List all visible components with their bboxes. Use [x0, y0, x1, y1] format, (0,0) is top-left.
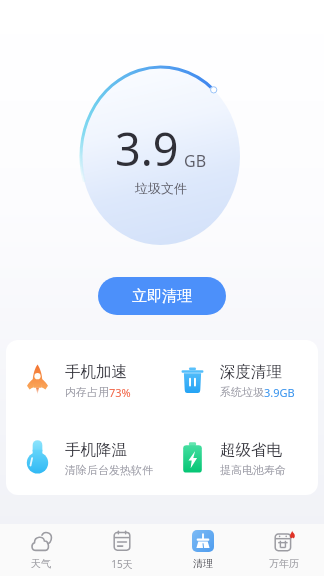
other: 天气 [30, 530, 52, 552]
other: 万年历 [273, 530, 295, 552]
staticText: 立即清理 [132, 287, 192, 306]
staticText: 内存占用 [65, 385, 109, 399]
staticText: 手机加速 [65, 362, 127, 382]
staticText: 系统垃圾 [220, 385, 264, 399]
staticText: 垃圾文件 [135, 180, 187, 196]
button[interactable]: 深度清理 [181, 362, 318, 400]
staticText: 深度清理 [220, 362, 282, 382]
button[interactable]: 手机加速 [26, 362, 165, 400]
button[interactable]: 天气 [0, 524, 81, 576]
button[interactable]: 清理 [162, 524, 243, 576]
button[interactable]: 立即清理 [98, 277, 226, 315]
button[interactable]: 超级省电 [181, 439, 318, 477]
button[interactable]: 15天 [81, 524, 162, 576]
staticText: GB [184, 150, 207, 172]
staticText: 万年历 [269, 557, 299, 570]
staticText: 清理 [193, 557, 213, 570]
staticText: 3.9 [115, 118, 179, 179]
button[interactable]: 手机降温 [26, 439, 165, 477]
button[interactable]: 万年历 [243, 524, 324, 576]
other: 15天 [111, 530, 133, 552]
staticText: 清除后台发热软件 [65, 463, 153, 477]
staticText: 15天 [111, 557, 133, 571]
staticText: 手机降温 [65, 440, 127, 460]
staticText: 3.9GB [264, 385, 295, 400]
other: 清理 [192, 530, 214, 552]
staticText: 天气 [31, 557, 51, 570]
staticText: 超级省电 [220, 440, 282, 460]
staticText: 73% [109, 385, 131, 400]
staticText: 提高电池寿命 [220, 463, 286, 477]
